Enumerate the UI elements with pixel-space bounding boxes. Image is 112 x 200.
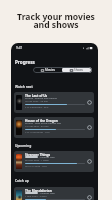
staticText: The Mandalorian <box>25 189 85 193</box>
staticText: 18 Apr 2023 · 45 min <box>25 99 85 102</box>
staticText: Upcoming <box>15 143 32 147</box>
button[interactable]: The Mandalorian <box>14 187 94 200</box>
button[interactable]: Movies <box>33 67 62 73</box>
staticText: Watch next <box>15 84 33 88</box>
staticText: Progress <box>15 59 35 65</box>
staticText: Stranger Things <box>25 153 85 157</box>
other: Status icons <box>82 46 93 50</box>
button[interactable]: Stranger Things <box>14 151 94 172</box>
staticText: · Chapter One <box>39 191 55 194</box>
staticText: 1 Mar 2023 · 3 days <box>25 194 85 197</box>
staticText: The Last of Us <box>25 94 85 98</box>
button[interactable]: House of the Dragon <box>14 117 94 138</box>
staticText: 14 Aug 2022 · 62 min <box>25 124 85 127</box>
button[interactable]: Mark as watched <box>87 100 92 105</box>
staticText: Shows <box>74 68 84 72</box>
staticText: House of the Dragon <box>25 119 85 123</box>
staticText: 5 of 9 episodes · 55% <box>25 105 85 108</box>
staticText: Movies <box>45 68 55 72</box>
button[interactable]: The Last of Us <box>14 92 94 113</box>
staticText: 26 May 2022 · 1 week <box>25 158 85 161</box>
staticText: Track your movies and shows <box>0 11 112 31</box>
staticText: Catch up <box>15 178 29 182</box>
staticText: S01E05 · Endure and Survive <box>25 96 85 99</box>
staticText: 38 of 41 aired · 83% <box>25 164 85 167</box>
staticText: 4 of 10 episodes · 40% <box>25 130 85 133</box>
button[interactable]: Mark as watched <box>87 195 92 200</box>
staticText: 9:41 <box>16 46 23 50</box>
button[interactable]: Mark as watched <box>87 125 92 130</box>
button[interactable]: Shows <box>62 67 92 73</box>
staticText: · Chapter One <box>39 155 55 158</box>
staticText: S01E04 · King of the Narrow Sea <box>25 121 85 124</box>
button[interactable]: Mark as watched <box>87 159 92 164</box>
